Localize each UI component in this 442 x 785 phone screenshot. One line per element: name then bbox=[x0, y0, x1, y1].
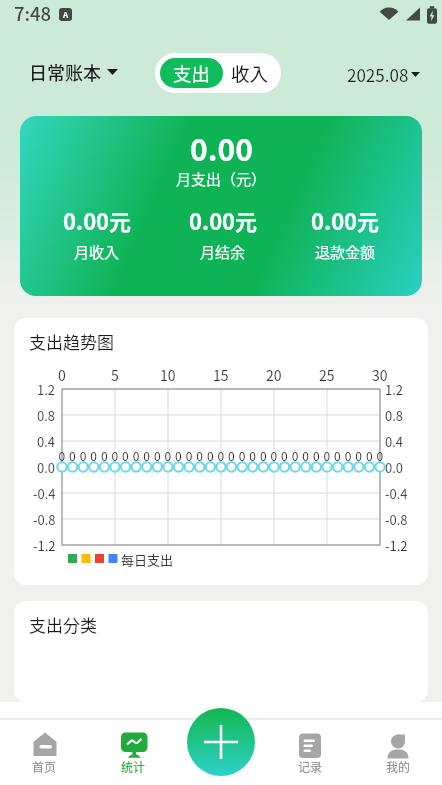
staticText: 2025.08 bbox=[347, 62, 409, 87]
button[interactable] bbox=[187, 708, 255, 776]
staticText: 收入 bbox=[231, 60, 269, 87]
button[interactable]: 日常账本 bbox=[29, 42, 118, 102]
staticText: 我的 bbox=[386, 758, 411, 775]
button[interactable]: 2025.08 bbox=[347, 44, 420, 104]
staticText: 首页 bbox=[32, 758, 57, 775]
staticText: 0.00元 bbox=[311, 204, 380, 236]
staticText: 退款金额 bbox=[315, 241, 376, 263]
staticText: 支出趋势图 bbox=[29, 329, 114, 354]
button[interactable]: 支出分类 bbox=[14, 601, 428, 702]
button[interactable]: 0.00 bbox=[20, 116, 422, 296]
staticText: 记录 bbox=[298, 758, 323, 775]
staticText: 0.00 bbox=[190, 126, 253, 169]
staticText: 7:48 bbox=[14, 0, 52, 27]
staticText: 月支出（元） bbox=[176, 168, 267, 190]
staticText: 0.00元 bbox=[63, 204, 132, 236]
button[interactable]: 收入 bbox=[223, 58, 276, 88]
staticText: 月收入 bbox=[74, 241, 120, 263]
staticText: A bbox=[63, 9, 69, 21]
button[interactable]: 我的 bbox=[354, 732, 442, 777]
button[interactable]: 统计 bbox=[89, 732, 178, 777]
staticText: 支出分类 bbox=[29, 612, 97, 637]
button[interactable]: 首页 bbox=[0, 732, 89, 777]
staticText: 月结余 bbox=[200, 241, 246, 263]
staticText: 支出 bbox=[173, 60, 211, 87]
staticText: 日常账本 bbox=[29, 59, 101, 85]
staticText: 0.00元 bbox=[189, 204, 258, 236]
staticText: 统计 bbox=[121, 758, 146, 775]
button[interactable]: 支出 bbox=[160, 58, 223, 88]
button[interactable]: 记录 bbox=[266, 732, 354, 777]
